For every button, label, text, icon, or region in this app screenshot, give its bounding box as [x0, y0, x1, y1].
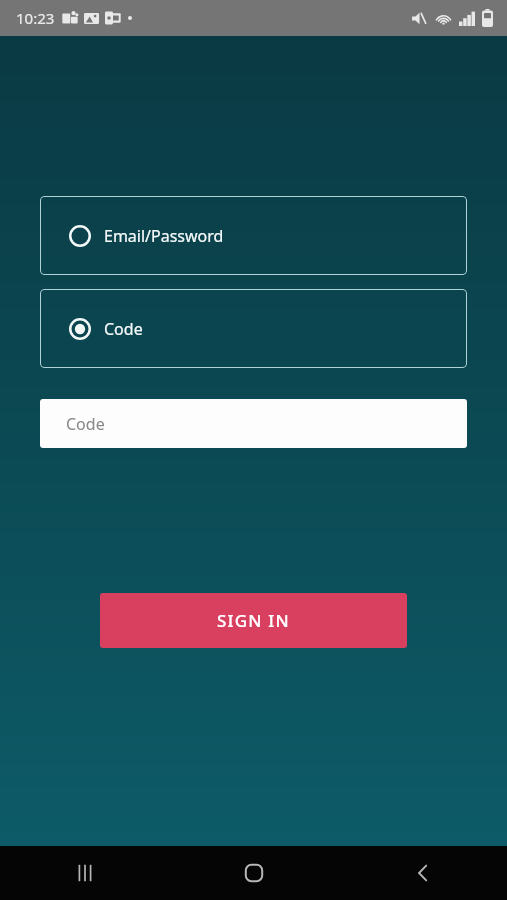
button[interactable]: Recents — [0, 846, 169, 900]
button[interactable]: Back — [338, 846, 507, 900]
button[interactable]: Home — [169, 846, 338, 900]
button[interactable]: Code — [40, 399, 467, 448]
button[interactable]: SIGN IN — [100, 593, 407, 648]
staticText: SIGN IN — [217, 609, 290, 632]
button[interactable]: Email/Password — [40, 196, 467, 275]
staticText: 10:23 — [16, 8, 55, 28]
staticText: Code — [66, 413, 105, 435]
button[interactable]: Code — [40, 289, 467, 368]
staticText: Code — [104, 318, 143, 340]
staticText: Email/Password — [104, 225, 224, 247]
